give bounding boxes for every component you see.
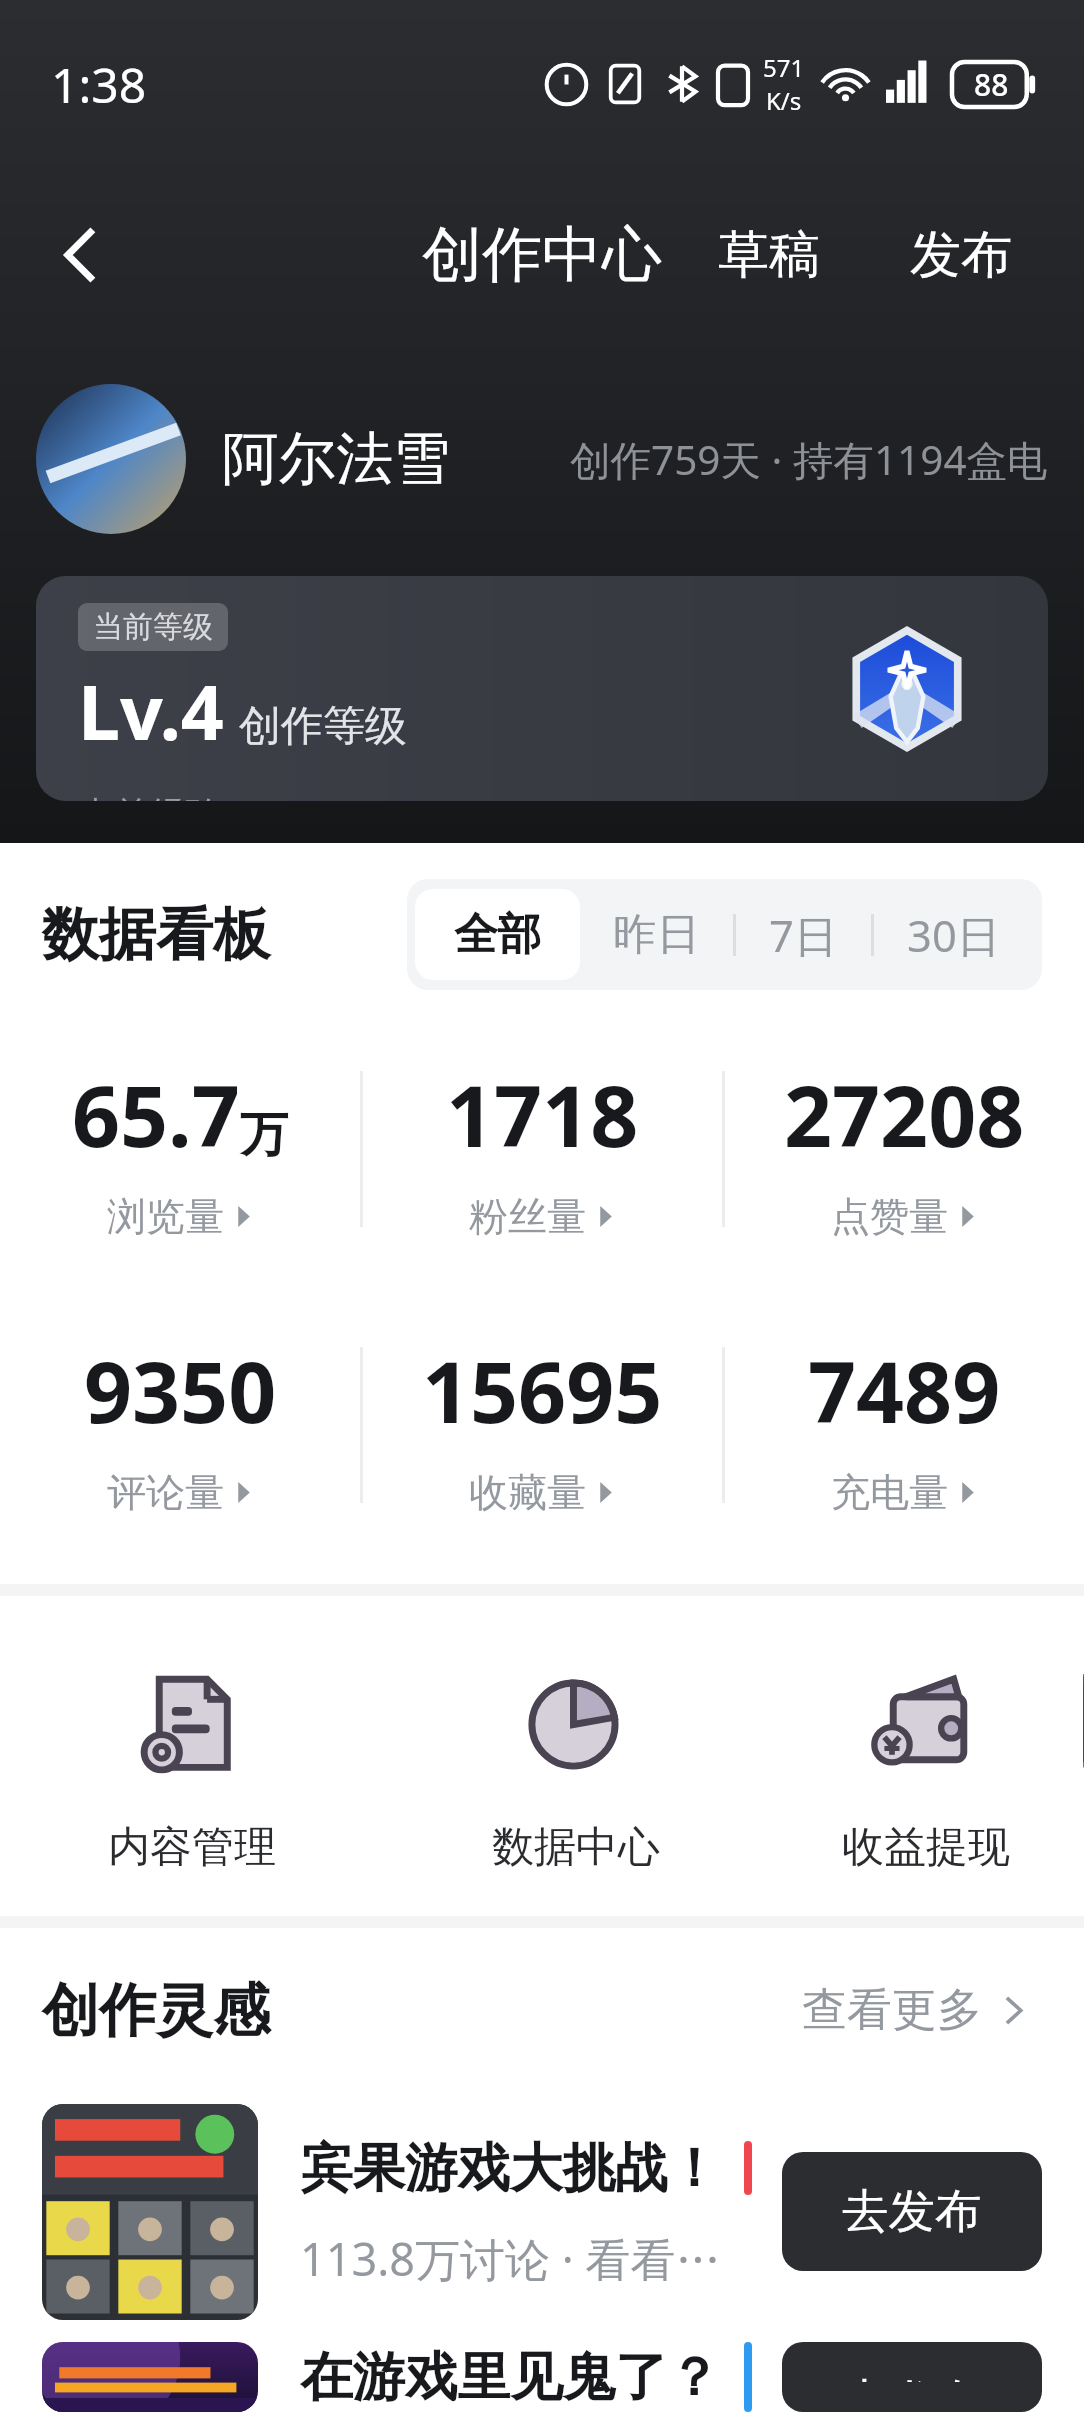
staticText: 充电量 [831,1468,948,1517]
button[interactable]: 发布 [880,205,1042,305]
button[interactable]: 7日 [736,887,871,982]
staticText: 当前经验3549/4410 [78,789,401,801]
staticText: 创作中心 [422,217,662,293]
staticText: 评论量 [107,1468,224,1517]
staticText: 草稿 [718,223,820,287]
staticText: 昨日 [613,907,700,962]
button[interactable]: 当前等级 [36,576,1048,801]
button[interactable]: 昨日 [580,889,733,980]
button[interactable]: 宾果游戏大挑战！ [0,2081,1084,2342]
staticText: 发布 [910,223,1012,287]
staticText: 571 [763,51,805,84]
staticText: 7日 [769,905,838,964]
button[interactable]: 阿尔法雪 [36,384,1048,534]
staticText: 查看更多 [802,1982,982,2039]
button[interactable]: 去发布 [782,2342,1042,2412]
staticText: 点赞量 [831,1192,948,1241]
button[interactable]: 7489 [725,1308,1084,1542]
staticText: 88 [974,64,1009,105]
button[interactable]: 收益提现 [768,1644,1084,1874]
staticText: 全部 [454,907,541,962]
staticText: 浏览量 [107,1192,224,1241]
staticText: 创作等级 [239,700,407,753]
staticText: 15695 [422,1333,663,1447]
button[interactable]: 数据中心 [384,1644,768,1874]
staticText: 创作759天 · 持有1194盒电 [570,432,1048,487]
button[interactable]: 1718 [363,1032,722,1266]
staticText: 收藏量 [469,1468,586,1517]
staticText: 内容管理 [108,1821,276,1874]
staticText: 1718 [446,1057,639,1171]
staticText: 收益提现 [842,1821,1010,1874]
button[interactable]: 内容管理 [0,1644,384,1874]
button[interactable]: 草稿 [688,205,850,305]
button[interactable]: 查看更多 [790,1970,1042,2051]
staticText: 数据中心 [492,1821,660,1874]
staticText: 去发布 [842,2182,982,2241]
staticText: 阿尔法雪 [222,423,450,495]
staticText: 30日 [907,905,1001,964]
staticText: 当前等级 [93,608,213,646]
staticText: 113.8万讨论 · 看看你能不能连成一线？ [300,2228,752,2289]
button[interactable]: 9350 [0,1308,360,1542]
staticText: 宾果游戏大挑战！ [300,2135,720,2201]
staticText: 在游戏里见鬼了？ [300,2344,720,2410]
button[interactable]: 65.7 [0,1032,360,1266]
staticText: 9350 [84,1333,277,1447]
button[interactable]: 27208 [725,1032,1084,1266]
button[interactable]: 在游戏里见鬼了？ [0,2342,1084,2412]
staticText: 1:38 [51,52,147,117]
staticText: 万 [240,1105,288,1165]
staticText: 创作灵感 [42,1975,270,2047]
button[interactable]: 全部 [415,889,580,980]
staticText: 粉丝量 [469,1192,586,1241]
staticText: K/s [766,84,802,117]
staticText: 7489 [808,1333,1001,1447]
staticText: 去发布 [842,2372,982,2382]
button[interactable]: Back [15,189,147,321]
button[interactable]: 去发布 [782,2152,1042,2271]
button[interactable]: 15695 [363,1308,722,1542]
staticText: 27208 [784,1057,1025,1171]
button[interactable]: 30日 [874,887,1034,982]
staticText: 数据看板 [42,899,270,971]
staticText: Lv.4 [78,660,224,762]
staticText: 65.7 [72,1057,240,1171]
